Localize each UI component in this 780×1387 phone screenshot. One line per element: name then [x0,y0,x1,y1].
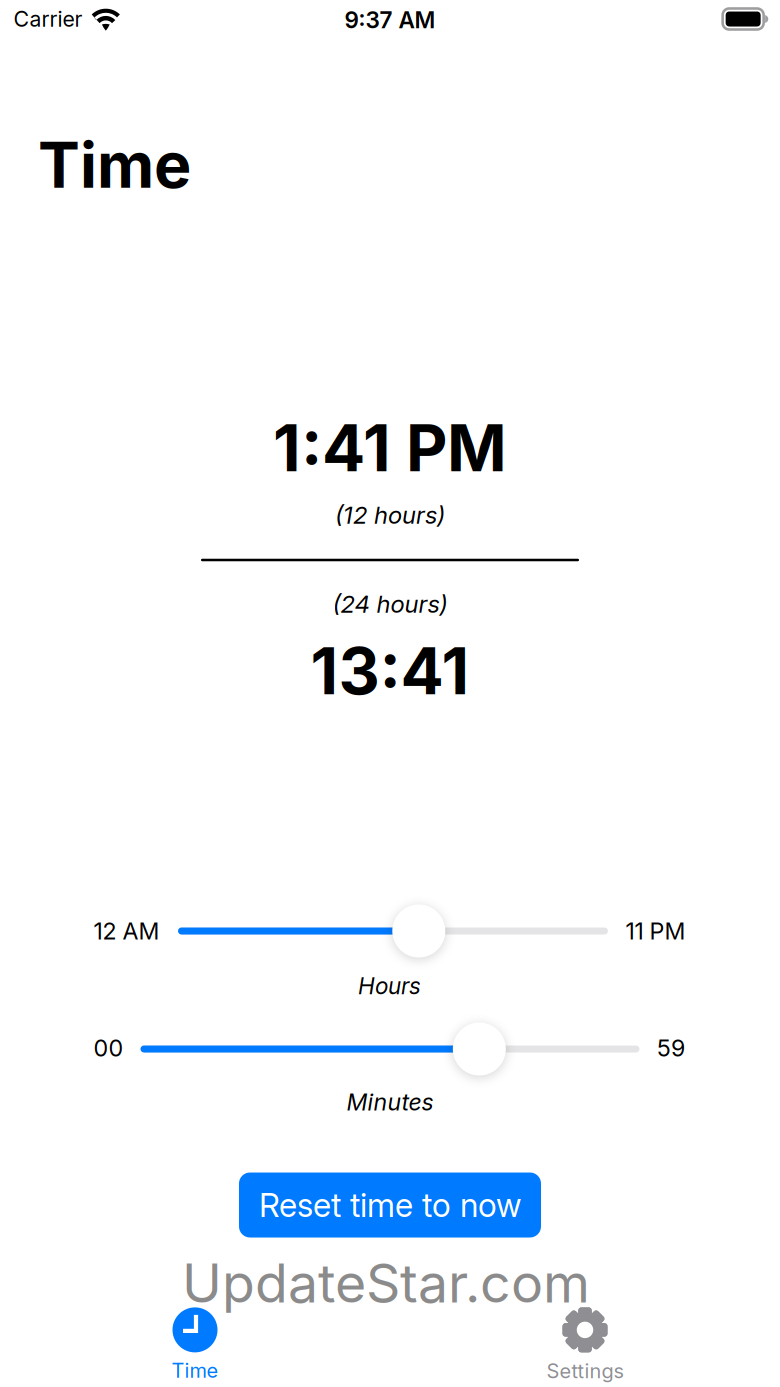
button[interactable]: Time [0,1300,390,1387]
staticText: (24 hours) [332,589,447,618]
staticText: UpdateStar.com [182,1251,590,1315]
staticText: (12 hours) [335,500,445,529]
staticText: 12 AM [93,917,159,945]
staticText: Carrier [13,6,82,32]
staticText: 1:41 PM [273,409,507,487]
staticText: Hours [358,972,421,1000]
staticText: Reset time to now [259,1185,521,1225]
staticText: 11 PM [625,917,685,945]
button[interactable]: Reset time to now [239,1172,541,1237]
staticText: 59 [657,1034,685,1062]
staticText: 9:37 AM [344,6,435,34]
staticText: Settings [546,1359,623,1383]
staticText: Minutes [346,1088,433,1116]
staticText: Time [171,1358,218,1383]
staticText: 00 [93,1034,123,1062]
staticText: Time [38,127,191,203]
button[interactable]: Settings [390,1300,780,1387]
staticText: 13:41 [310,632,469,710]
